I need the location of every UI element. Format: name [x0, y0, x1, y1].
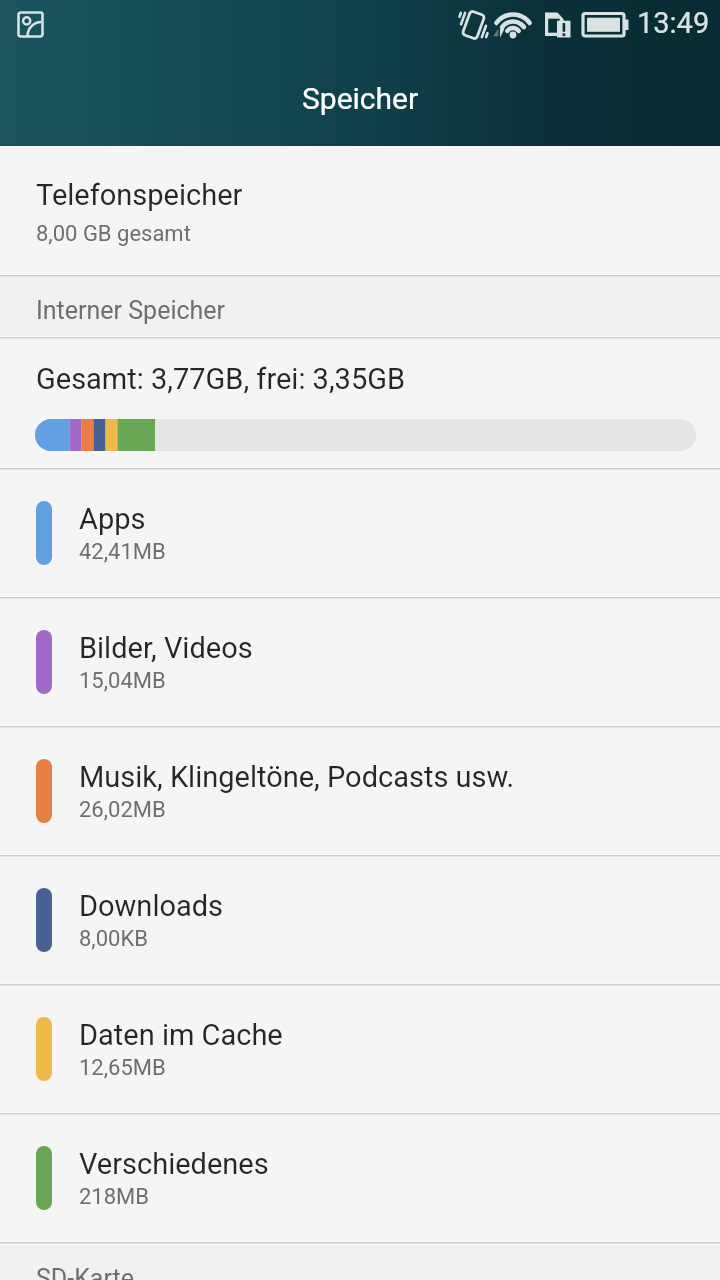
staticText: Bilder, Videos	[79, 631, 253, 665]
button[interactable]: Downloads	[0, 857, 720, 984]
staticText: 12,65MB	[79, 1055, 166, 1081]
staticText: Telefonspeicher	[36, 178, 243, 212]
staticText: 42,41MB	[79, 539, 166, 565]
staticText: 8,00 GB gesamt	[36, 221, 191, 247]
staticText: Musik, Klingeltöne, Podcasts usw.	[79, 760, 515, 794]
staticText: Apps	[79, 502, 146, 536]
staticText: Interner Speicher	[36, 296, 226, 325]
button[interactable]: SD-Karte	[0, 1245, 720, 1280]
button[interactable]: Verschiedenes	[0, 1115, 720, 1242]
button[interactable]: Telefonspeicher	[0, 146, 720, 274]
staticText: Speicher	[302, 81, 419, 116]
staticText: Verschiedenes	[79, 1147, 269, 1181]
button[interactable]: Interner Speicher	[0, 277, 720, 337]
staticText: SD-Karte	[36, 1264, 134, 1280]
staticText: Gesamt: 3,77GB, frei: 3,35GB	[36, 362, 406, 396]
button[interactable]: Apps	[0, 470, 720, 597]
button[interactable]: Bilder, Videos	[0, 599, 720, 726]
staticText: 13:49	[637, 6, 710, 40]
staticText: 26,02MB	[79, 797, 166, 823]
button[interactable]: Daten im Cache	[0, 986, 720, 1113]
staticText: 15,04MB	[79, 668, 166, 694]
staticText: Daten im Cache	[79, 1018, 283, 1052]
staticText: 8,00KB	[79, 926, 148, 952]
staticText: Downloads	[79, 889, 224, 923]
staticText: 218MB	[79, 1184, 150, 1210]
button[interactable]: Musik, Klingeltöne, Podcasts usw.	[0, 728, 720, 855]
